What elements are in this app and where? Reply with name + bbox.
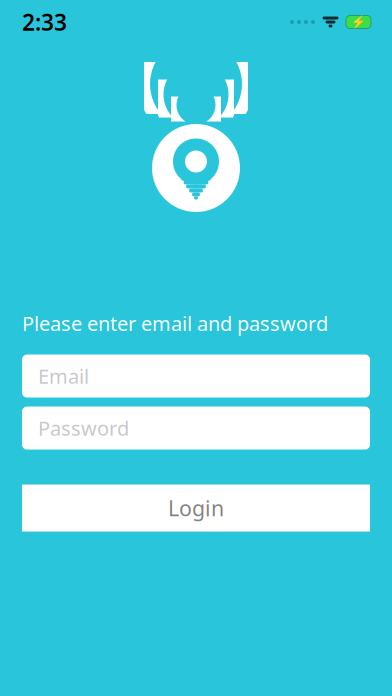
button[interactable]: Email bbox=[22, 355, 370, 398]
staticText: ⚡ bbox=[351, 15, 366, 29]
staticText: Login bbox=[168, 494, 224, 522]
button[interactable]: Password bbox=[22, 407, 370, 450]
staticText: Please enter email and password bbox=[22, 310, 328, 337]
staticText: 2:33 bbox=[22, 7, 67, 37]
staticText: Password bbox=[38, 415, 129, 441]
button[interactable]: Login bbox=[22, 485, 370, 532]
staticText: Email bbox=[38, 363, 89, 389]
